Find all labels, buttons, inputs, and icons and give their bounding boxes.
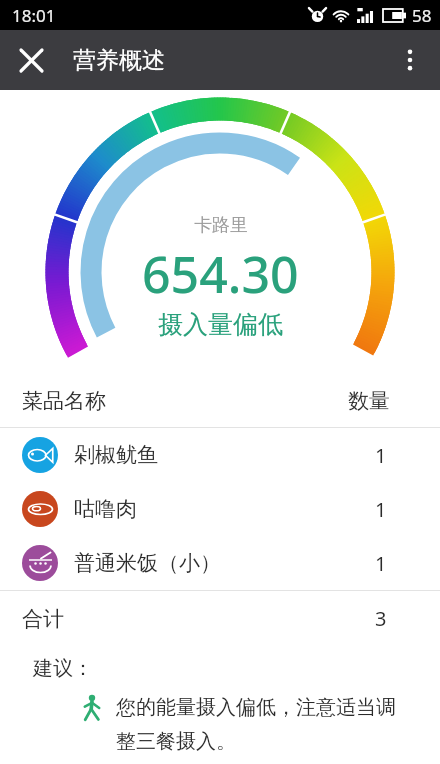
staticText: 普通米饭（小） [74,550,221,576]
staticText: 数量 [348,388,390,414]
staticText: 您的能量摄入偏低，注意适当调 整三餐摄入。 [116,695,396,754]
staticText: 营养概述 [73,46,165,75]
staticText: 1 [375,496,387,523]
button[interactable]: 普通米饭（小） [0,536,440,590]
staticText: 3 [375,605,387,632]
staticText: 菜品名称 [22,388,106,414]
button[interactable]: More options [388,38,432,82]
button[interactable]: 咕噜肉 [0,482,440,536]
staticText: 18:01 [12,4,56,27]
staticText: 654.30 [142,240,299,308]
staticText: 卡路里 [194,214,248,237]
staticText: 剁椒鱿鱼 [74,442,158,468]
staticText: 咕噜肉 [74,496,137,522]
staticText: 1 [375,550,387,577]
button[interactable]: Close [10,39,52,81]
staticText: 58 [412,4,432,27]
staticText: 建议： [33,656,93,681]
staticText: 1 [375,442,387,469]
staticText: 合计 [22,606,64,632]
staticText: 摄入量偏低 [158,309,283,340]
button[interactable]: 剁椒鱿鱼 [0,428,440,482]
